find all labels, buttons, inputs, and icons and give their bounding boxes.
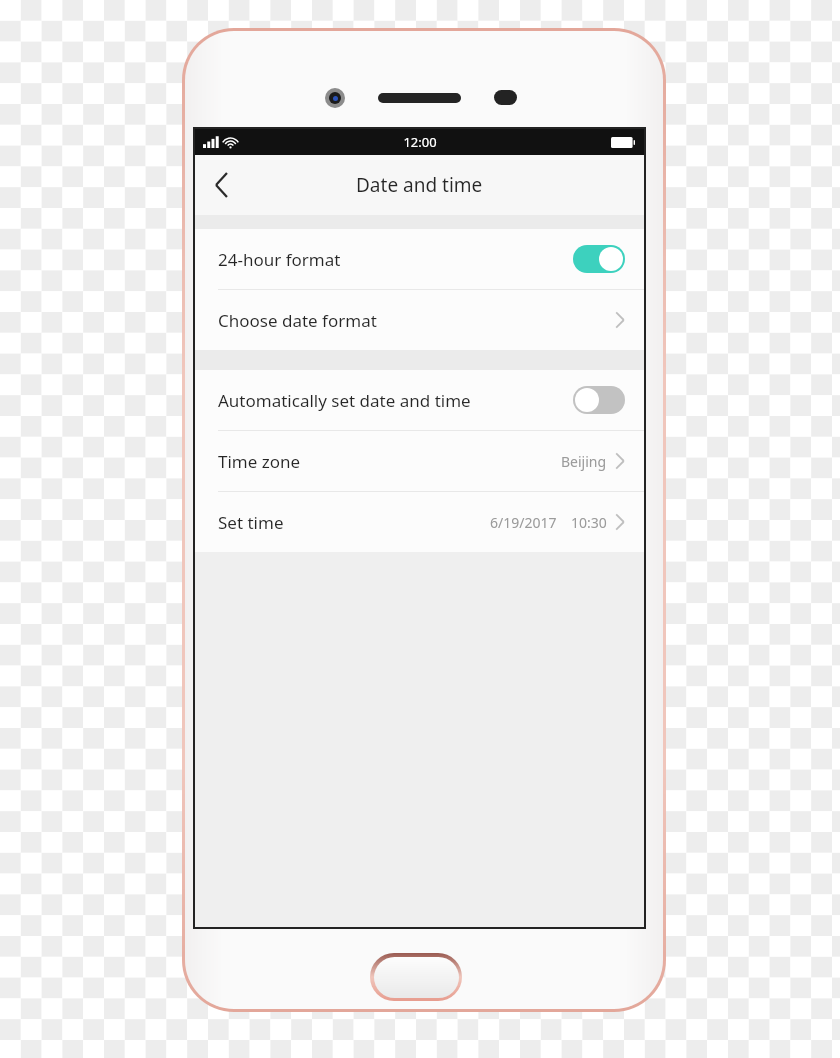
staticText: Choose date format bbox=[218, 309, 377, 332]
staticText: Date and time bbox=[356, 172, 483, 198]
staticText: 24-hour format bbox=[218, 248, 341, 271]
button[interactable]: 24-hour format bbox=[195, 229, 644, 289]
button[interactable]: Toggle off bbox=[573, 386, 625, 414]
button[interactable]: Home bbox=[370, 953, 462, 1001]
button[interactable]: Automatically set date and time bbox=[195, 370, 644, 430]
staticText: Time zone bbox=[218, 450, 301, 473]
staticText: Beijing bbox=[561, 452, 607, 471]
button[interactable]: Time zone bbox=[195, 431, 644, 491]
staticText: 6/19/2017 bbox=[490, 513, 557, 532]
button[interactable]: Set time bbox=[195, 492, 644, 552]
button[interactable]: Toggle on bbox=[573, 245, 625, 273]
button[interactable]: Choose date format bbox=[195, 290, 644, 350]
staticText: Set time bbox=[218, 511, 284, 534]
staticText: 10:30 bbox=[571, 513, 607, 532]
staticText: Automatically set date and time bbox=[218, 389, 471, 412]
staticText: 12:00 bbox=[403, 133, 437, 151]
button[interactable]: Back bbox=[195, 159, 247, 211]
